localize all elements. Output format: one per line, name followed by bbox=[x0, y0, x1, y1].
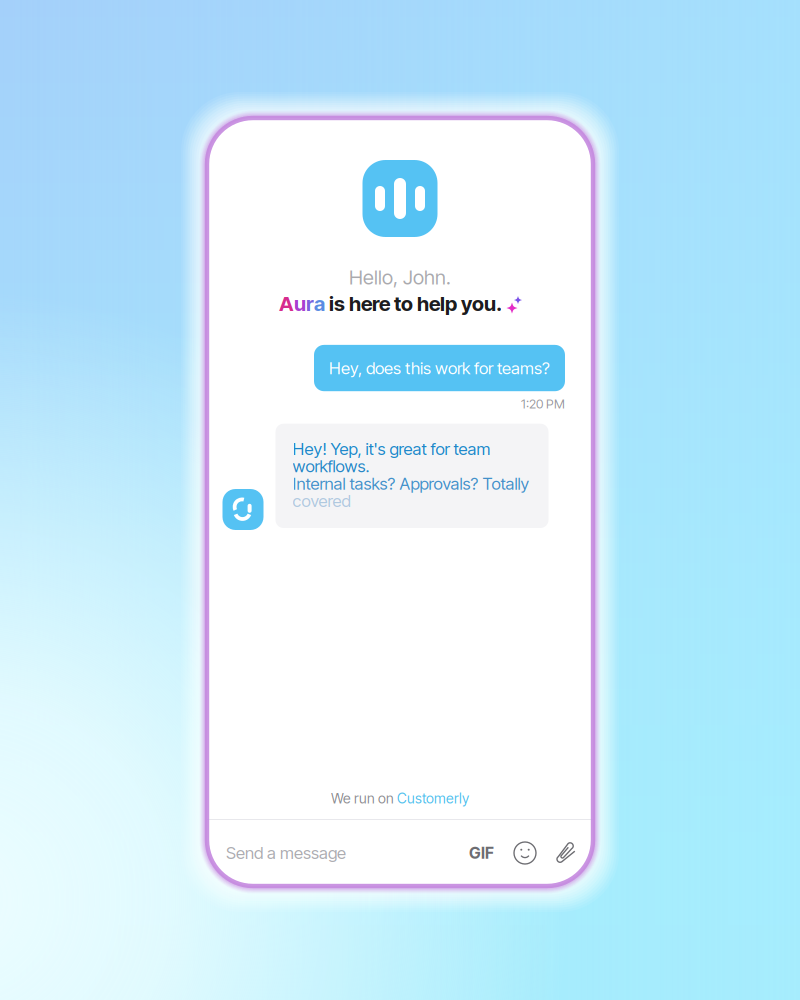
staticText: u bbox=[294, 291, 306, 316]
staticText: We run on bbox=[331, 790, 397, 807]
staticText: Internal tasks? Approvals? Totally bbox=[292, 473, 529, 494]
staticText: Customerly bbox=[397, 790, 469, 807]
staticText: Hey! Yep, it's great for team bbox=[292, 439, 490, 459]
staticText: Send a message bbox=[226, 843, 346, 863]
staticText: GIF bbox=[469, 843, 494, 863]
staticText: Hello, John. bbox=[349, 265, 451, 289]
staticText: workflows. bbox=[292, 456, 369, 476]
staticText: 1:20 PM bbox=[521, 396, 565, 412]
staticText: is here to help you. bbox=[325, 291, 502, 316]
button[interactable]: GIF bbox=[466, 843, 497, 863]
button[interactable]: Emoji bbox=[514, 842, 536, 864]
staticText: A bbox=[279, 291, 294, 316]
staticText: Hey, does this work for teams? bbox=[329, 358, 550, 378]
button[interactable]: Customerly bbox=[397, 790, 469, 807]
staticText: a bbox=[314, 291, 325, 316]
staticText: r bbox=[306, 291, 314, 316]
staticText: covered bbox=[292, 491, 350, 511]
button[interactable]: Attach file bbox=[553, 840, 580, 866]
button[interactable]: Hey, does this work for teams? bbox=[314, 345, 565, 391]
